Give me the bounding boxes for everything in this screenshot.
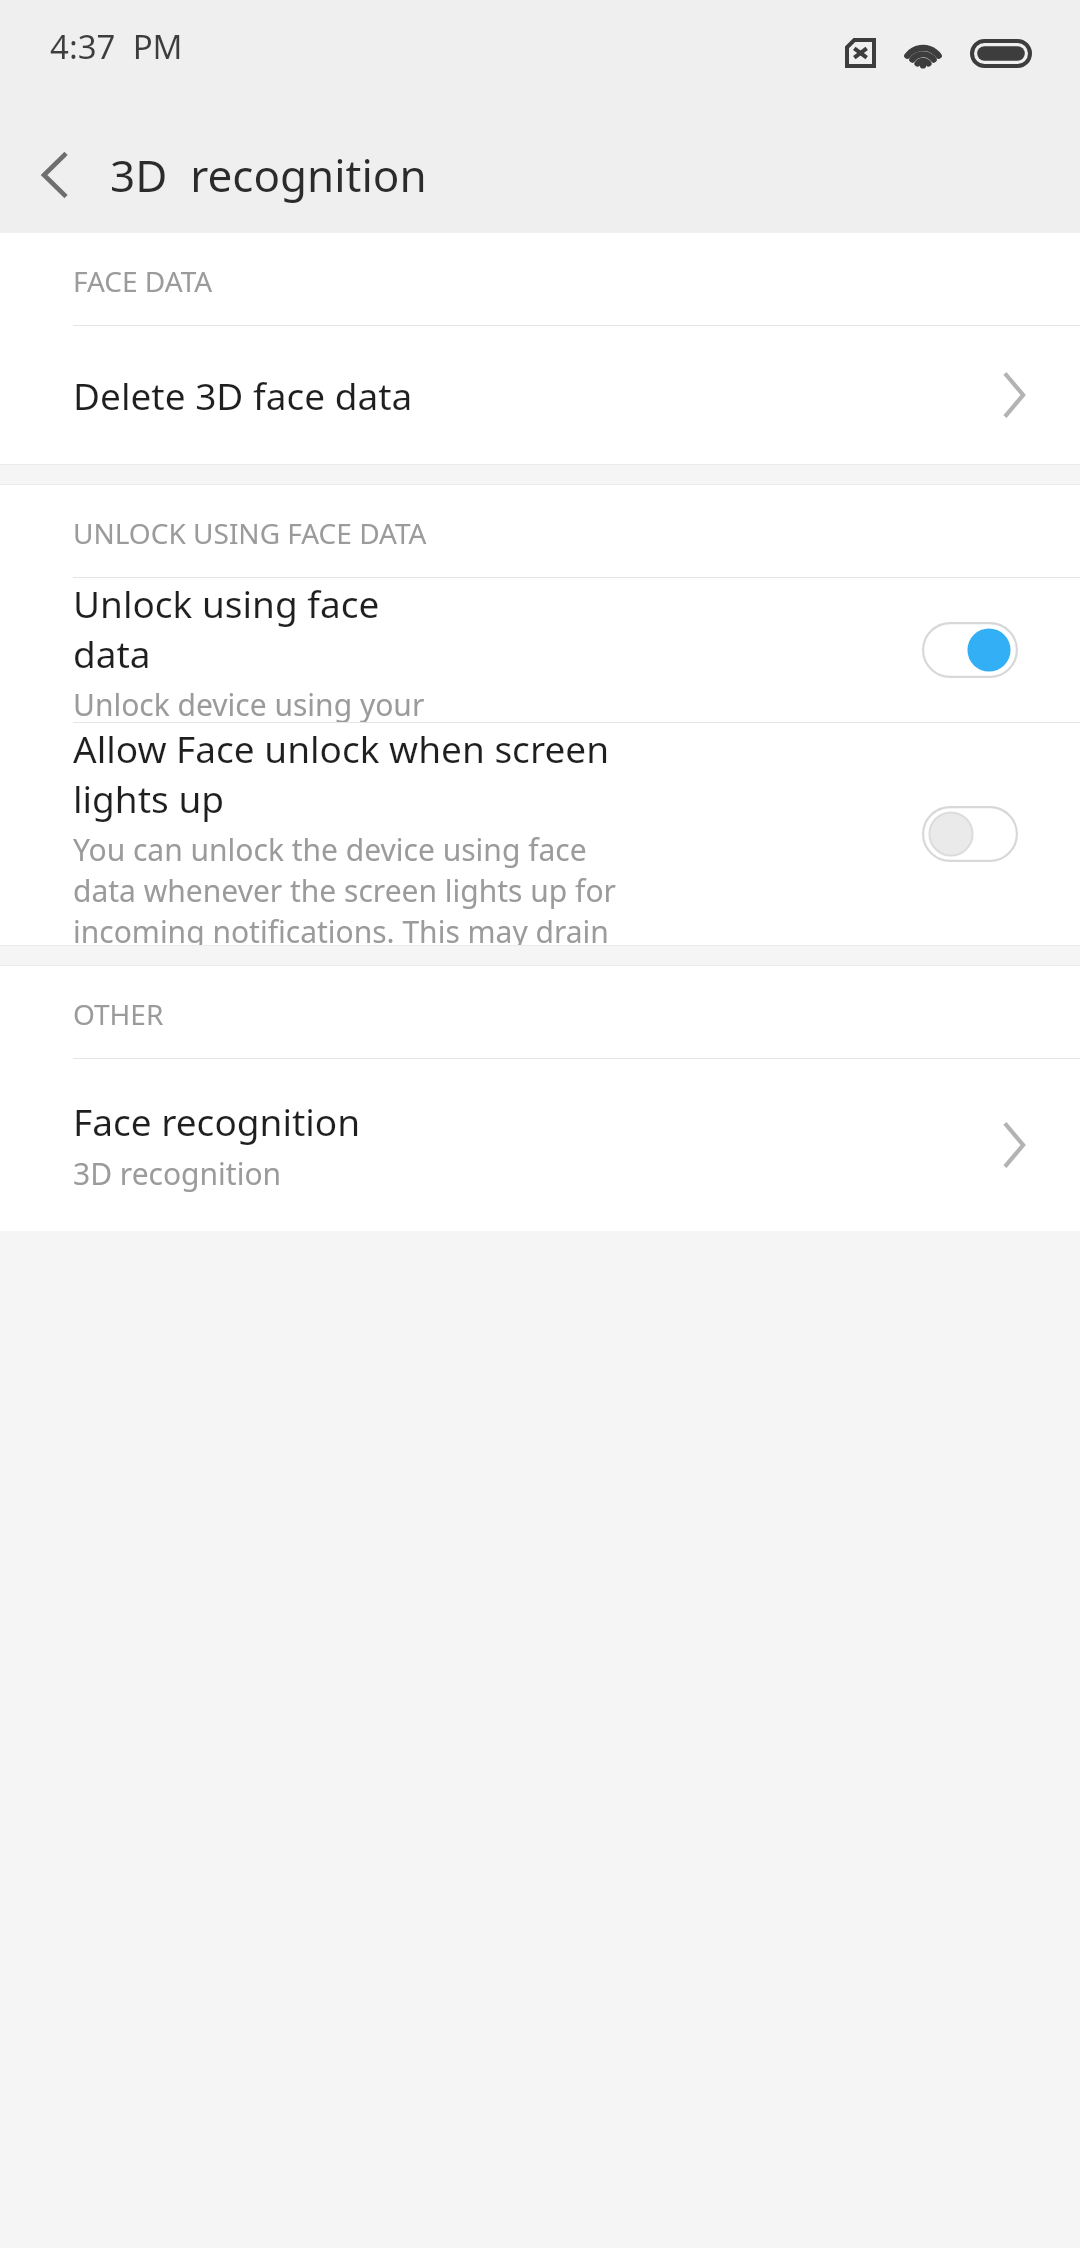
staticText: 4:37 PM — [50, 24, 183, 69]
staticText: 3D recognition — [110, 145, 427, 205]
button[interactable]: Navigate up — [18, 132, 94, 218]
staticText: You can unlock the device using face dat… — [73, 829, 653, 945]
staticText: FACE DATA — [73, 262, 213, 300]
staticText: 3D recognition — [73, 1153, 282, 1194]
button[interactable]: On — [922, 622, 1018, 678]
staticText: OTHER — [73, 995, 164, 1033]
staticText: UNLOCK USING FACE DATA — [73, 514, 427, 552]
staticText: Allow Face unlock when screen lights up — [73, 723, 653, 823]
button[interactable]: Delete 3D face data — [0, 326, 1080, 464]
button[interactable]: Allow Face unlock when screen lights up — [0, 723, 1080, 945]
button[interactable]: Off — [922, 806, 1018, 862]
button[interactable]: Face recognition — [0, 1059, 1080, 1231]
staticText: Face recognition — [73, 1096, 361, 1146]
button[interactable]: Unlock using face data — [0, 578, 1080, 722]
staticText: Unlock using face data — [73, 578, 461, 678]
staticText: Delete 3D face data — [73, 370, 413, 420]
staticText: Unlock device using your face data — [73, 684, 461, 722]
